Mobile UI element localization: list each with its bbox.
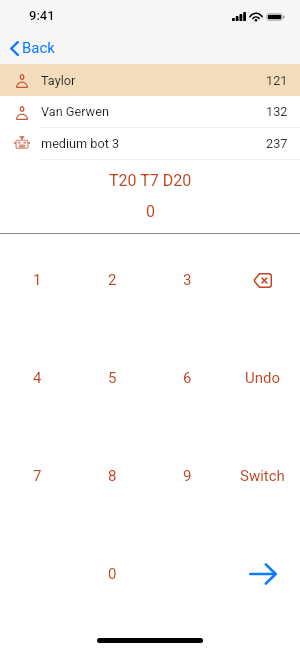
button[interactable]: 9 — [150, 427, 225, 525]
staticText: 3 — [183, 271, 192, 289]
button[interactable]: 5 — [75, 329, 150, 427]
staticText: 7 — [33, 467, 42, 485]
button[interactable]: medium bot 3 — [0, 128, 300, 159]
staticText: 1 — [33, 271, 42, 289]
button[interactable]: 0 — [75, 525, 150, 623]
staticText: Undo — [245, 369, 281, 387]
staticText: Taylor — [41, 73, 76, 88]
staticText: 132 — [266, 104, 288, 119]
staticText: 121 — [266, 73, 288, 88]
staticText: 0 — [146, 202, 155, 221]
button[interactable]: Switch — [225, 427, 300, 525]
button[interactable]: Back — [0, 35, 67, 61]
button[interactable]: Enter score — [225, 525, 300, 623]
staticText: 2 — [108, 271, 117, 289]
staticText: 0 — [108, 565, 117, 583]
staticText: 4 — [33, 369, 42, 387]
button[interactable]: 6 — [150, 329, 225, 427]
button[interactable]: 3 — [150, 231, 225, 329]
staticText: Van Gerwen — [41, 104, 109, 119]
button[interactable]: 7 — [0, 427, 75, 525]
staticText: 237 — [266, 136, 288, 151]
staticText: medium bot 3 — [41, 136, 120, 151]
button[interactable]: Taylor — [0, 64, 300, 96]
staticText: 9 — [183, 467, 192, 485]
button[interactable]: 8 — [75, 427, 150, 525]
button[interactable]: 4 — [0, 329, 75, 427]
staticText: 6 — [183, 369, 192, 387]
button[interactable]: Undo — [225, 329, 300, 427]
button[interactable]: 2 — [75, 231, 150, 329]
staticText: Back — [22, 39, 55, 57]
button[interactable]: 1 — [0, 231, 75, 329]
staticText: 8 — [108, 467, 117, 485]
staticText: T20 T7 D20 — [109, 171, 192, 190]
staticText: Switch — [240, 467, 285, 485]
staticText: 9:41 — [29, 8, 55, 23]
staticText: 5 — [108, 369, 117, 387]
button[interactable]: Van Gerwen — [0, 96, 300, 127]
button[interactable]: Backspace — [225, 231, 300, 329]
